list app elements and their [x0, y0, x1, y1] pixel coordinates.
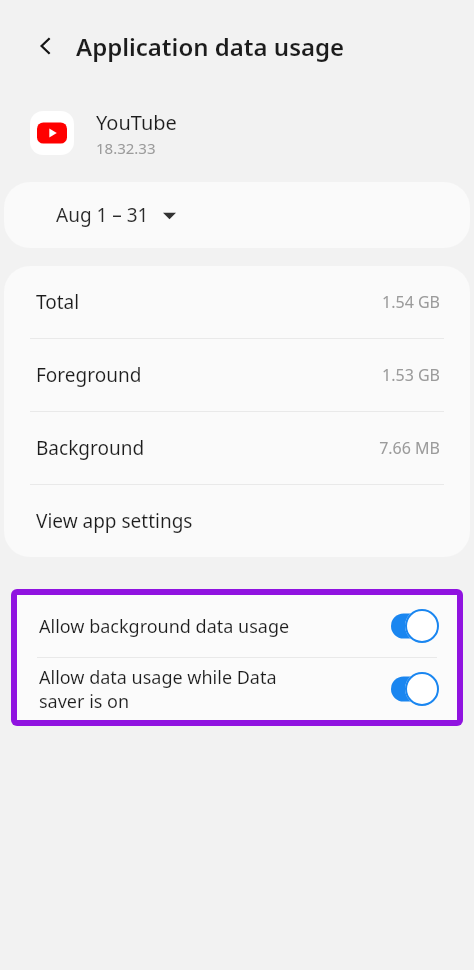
button[interactable]: Foreground	[4, 339, 470, 411]
button[interactable]: Aug 1 – 31	[4, 182, 470, 248]
button[interactable]: YouTube	[0, 92, 474, 174]
button[interactable]: Toggle on	[391, 672, 439, 706]
staticText: Application data usage	[76, 30, 345, 63]
button[interactable]: Back	[22, 22, 70, 70]
button[interactable]: View app settings	[4, 485, 470, 557]
staticText: Allow background data usage	[39, 614, 391, 639]
staticText: Total	[36, 289, 80, 315]
staticText: 18.32.33	[96, 138, 156, 158]
staticText: Allow data usage while Data saver is on	[39, 665, 391, 713]
button[interactable]: Allow data usage while Data saver is on	[17, 658, 457, 720]
staticText: 1.54 GB	[382, 291, 440, 313]
staticText: 1.53 GB	[382, 364, 440, 386]
staticText: View app settings	[36, 508, 193, 534]
button[interactable]: Total	[4, 266, 470, 338]
staticText: Foreground	[36, 362, 142, 388]
staticText: YouTube	[96, 109, 177, 136]
staticText: Aug 1 – 31	[56, 202, 149, 228]
button[interactable]: Allow background data usage	[17, 595, 457, 657]
button[interactable]: Toggle on	[391, 609, 439, 643]
staticText: 7.66 MB	[379, 437, 440, 459]
staticText: Background	[36, 435, 145, 461]
button[interactable]: Background	[4, 412, 470, 484]
